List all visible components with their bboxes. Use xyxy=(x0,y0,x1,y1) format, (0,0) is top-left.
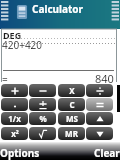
button[interactable]: Plus xyxy=(1,84,28,97)
button[interactable]: Scroll up xyxy=(86,112,113,125)
staticText: Calculator xyxy=(32,2,84,16)
other: Signal strength xyxy=(1,0,10,21)
button[interactable]: Memory store xyxy=(58,112,85,125)
staticText: % xyxy=(39,113,47,124)
button[interactable]: Multiply xyxy=(58,84,85,97)
button[interactable]: Square root xyxy=(29,127,56,140)
staticText: 840 xyxy=(95,71,114,86)
button[interactable]: Divide xyxy=(86,84,113,97)
staticText: DEG xyxy=(3,29,22,41)
staticText: = xyxy=(2,72,8,86)
staticText: X xyxy=(69,85,75,96)
button[interactable]: Memory recall xyxy=(58,127,85,140)
button[interactable]: Scroll down xyxy=(86,127,113,140)
staticText: 1/x xyxy=(8,113,21,124)
other: Battery xyxy=(110,0,119,21)
button[interactable]: Minus xyxy=(29,84,56,97)
button[interactable]: Square xyxy=(1,127,28,140)
button[interactable]: Clear xyxy=(94,146,120,160)
button[interactable]: Decimal point xyxy=(1,98,28,111)
staticText: MR xyxy=(65,128,78,139)
button[interactable]: Reciprocal xyxy=(1,112,28,125)
button[interactable]: Equals xyxy=(86,98,113,111)
button[interactable]: Clear memory xyxy=(58,98,85,111)
staticText: x² xyxy=(11,128,19,139)
staticText: MS xyxy=(66,113,78,124)
button[interactable]: Options xyxy=(0,146,40,160)
button[interactable]: Plus minus xyxy=(29,98,56,111)
staticText: 420+420 xyxy=(2,38,43,52)
button[interactable]: Percent xyxy=(29,112,56,125)
staticText: C xyxy=(69,99,75,110)
